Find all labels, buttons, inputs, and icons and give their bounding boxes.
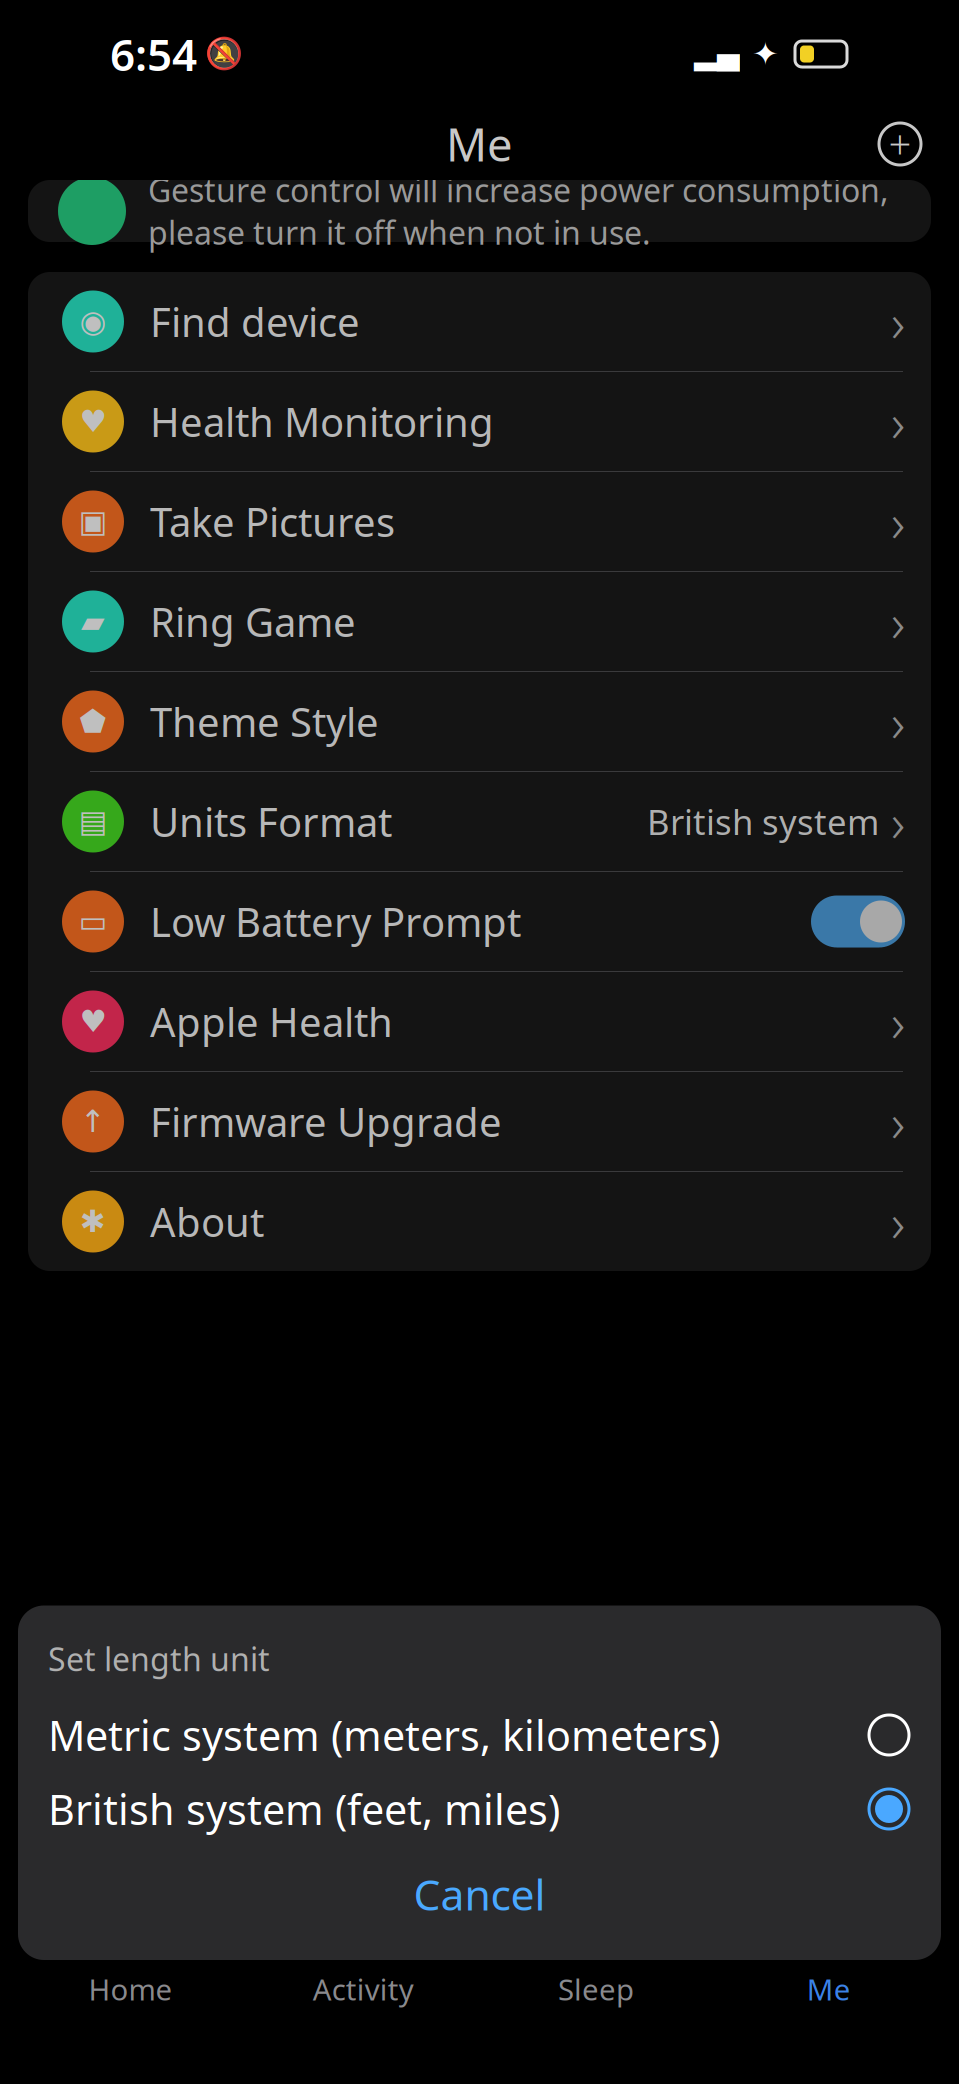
- staticText: Cancel: [413, 1866, 545, 1922]
- staticText: ▰: [81, 604, 105, 639]
- staticText: ›: [891, 1086, 905, 1157]
- button[interactable]: ◉: [28, 272, 931, 371]
- button[interactable]: ⬟: [28, 672, 931, 771]
- staticText: Me: [807, 1969, 851, 2008]
- button[interactable]: ↑: [28, 1072, 931, 1171]
- staticText: ◉: [79, 304, 106, 339]
- staticText: Take Pictures: [150, 495, 395, 548]
- staticText: 6:54: [110, 25, 197, 83]
- staticText: Theme Style: [150, 695, 379, 748]
- staticText: Set length unit: [48, 1637, 270, 1680]
- staticText: ›: [891, 386, 905, 457]
- button[interactable]: ▣: [28, 472, 931, 571]
- staticText: 🔕: [205, 36, 243, 71]
- staticText: ⬟: [79, 704, 106, 739]
- staticText: ▭: [78, 904, 107, 939]
- staticText: ›: [891, 1186, 905, 1257]
- staticText: Low Battery Prompt: [150, 895, 521, 948]
- staticText: ▂▄: [694, 37, 740, 71]
- staticText: ›: [891, 286, 905, 357]
- staticText: ›: [891, 586, 905, 657]
- staticText: Metric system (meters, kilometers): [48, 1708, 720, 1762]
- button[interactable]: ♥: [28, 372, 931, 471]
- button[interactable]: Home: [14, 1966, 247, 2012]
- staticText: British system (feet, miles): [48, 1782, 560, 1836]
- button[interactable]: Sleep: [479, 1966, 712, 2012]
- staticText: ♥: [79, 1004, 106, 1039]
- staticText: ›: [891, 786, 905, 857]
- staticText: ↑: [80, 1104, 106, 1139]
- staticText: ▣: [78, 504, 107, 539]
- staticText: Home: [88, 1969, 172, 2008]
- staticText: ♥: [79, 404, 106, 439]
- staticText: About: [150, 1195, 264, 1248]
- staticText: ›: [891, 686, 905, 757]
- button[interactable]: ✱: [28, 1172, 931, 1271]
- staticText: Firmware Upgrade: [150, 1095, 502, 1148]
- staticText: Health Monitoring: [150, 395, 494, 448]
- staticText: British system: [647, 798, 879, 844]
- button[interactable]: Metric system (meters, kilometers): [18, 1698, 941, 1772]
- button[interactable]: ▭: [28, 872, 931, 971]
- button[interactable]: Cancel: [18, 1846, 941, 1942]
- staticText: Me: [446, 114, 513, 174]
- staticText: ✱: [80, 1204, 106, 1239]
- staticText: Find device: [150, 295, 360, 348]
- staticText: Gesture control will increase power cons…: [148, 168, 889, 253]
- button[interactable]: Me: [712, 1966, 945, 2012]
- button[interactable]: Activity: [247, 1966, 480, 2012]
- button[interactable]: British system (feet, miles): [18, 1772, 941, 1846]
- staticText: +: [888, 117, 911, 170]
- button[interactable]: ▰: [28, 572, 931, 671]
- staticText: Apple Health: [150, 995, 393, 1048]
- button[interactable]: Add device: [871, 115, 929, 173]
- staticText: Units Format: [150, 795, 392, 848]
- staticText: Activity: [313, 1969, 414, 2008]
- button[interactable]: ♥: [28, 972, 931, 1071]
- button[interactable]: ▤: [28, 772, 931, 871]
- staticText: Sleep: [558, 1969, 634, 2008]
- staticText: ▤: [78, 804, 107, 839]
- staticText: Ring Game: [150, 595, 356, 648]
- staticText: ›: [891, 486, 905, 557]
- staticText: ✦: [752, 36, 779, 72]
- staticText: ›: [891, 986, 905, 1057]
